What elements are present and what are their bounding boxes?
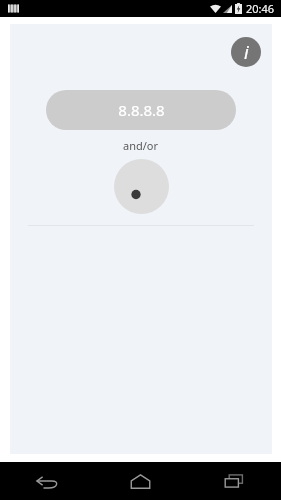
button[interactable]: Recent apps — [187, 462, 281, 500]
button[interactable]: 8.8.8.8 — [46, 90, 236, 130]
staticText: i — [244, 40, 249, 65]
button[interactable]: Info — [231, 37, 261, 67]
button[interactable]: Back — [0, 462, 93, 500]
button[interactable]: Home — [93, 462, 187, 500]
button[interactable]: Select location — [114, 159, 169, 214]
staticText: and/or — [123, 138, 159, 153]
staticText: 20:46 — [246, 1, 275, 16]
staticText: 8.8.8.8 — [118, 100, 165, 120]
